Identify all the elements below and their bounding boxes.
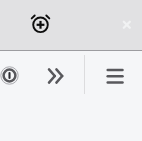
button[interactable]: Add alarm: [24, 7, 56, 39]
button[interactable]: Power: [0, 55, 30, 96]
button[interactable]: Close: [111, 9, 142, 41]
button[interactable]: Menu: [99, 59, 131, 91]
button[interactable]: Fast forward: [41, 60, 73, 92]
